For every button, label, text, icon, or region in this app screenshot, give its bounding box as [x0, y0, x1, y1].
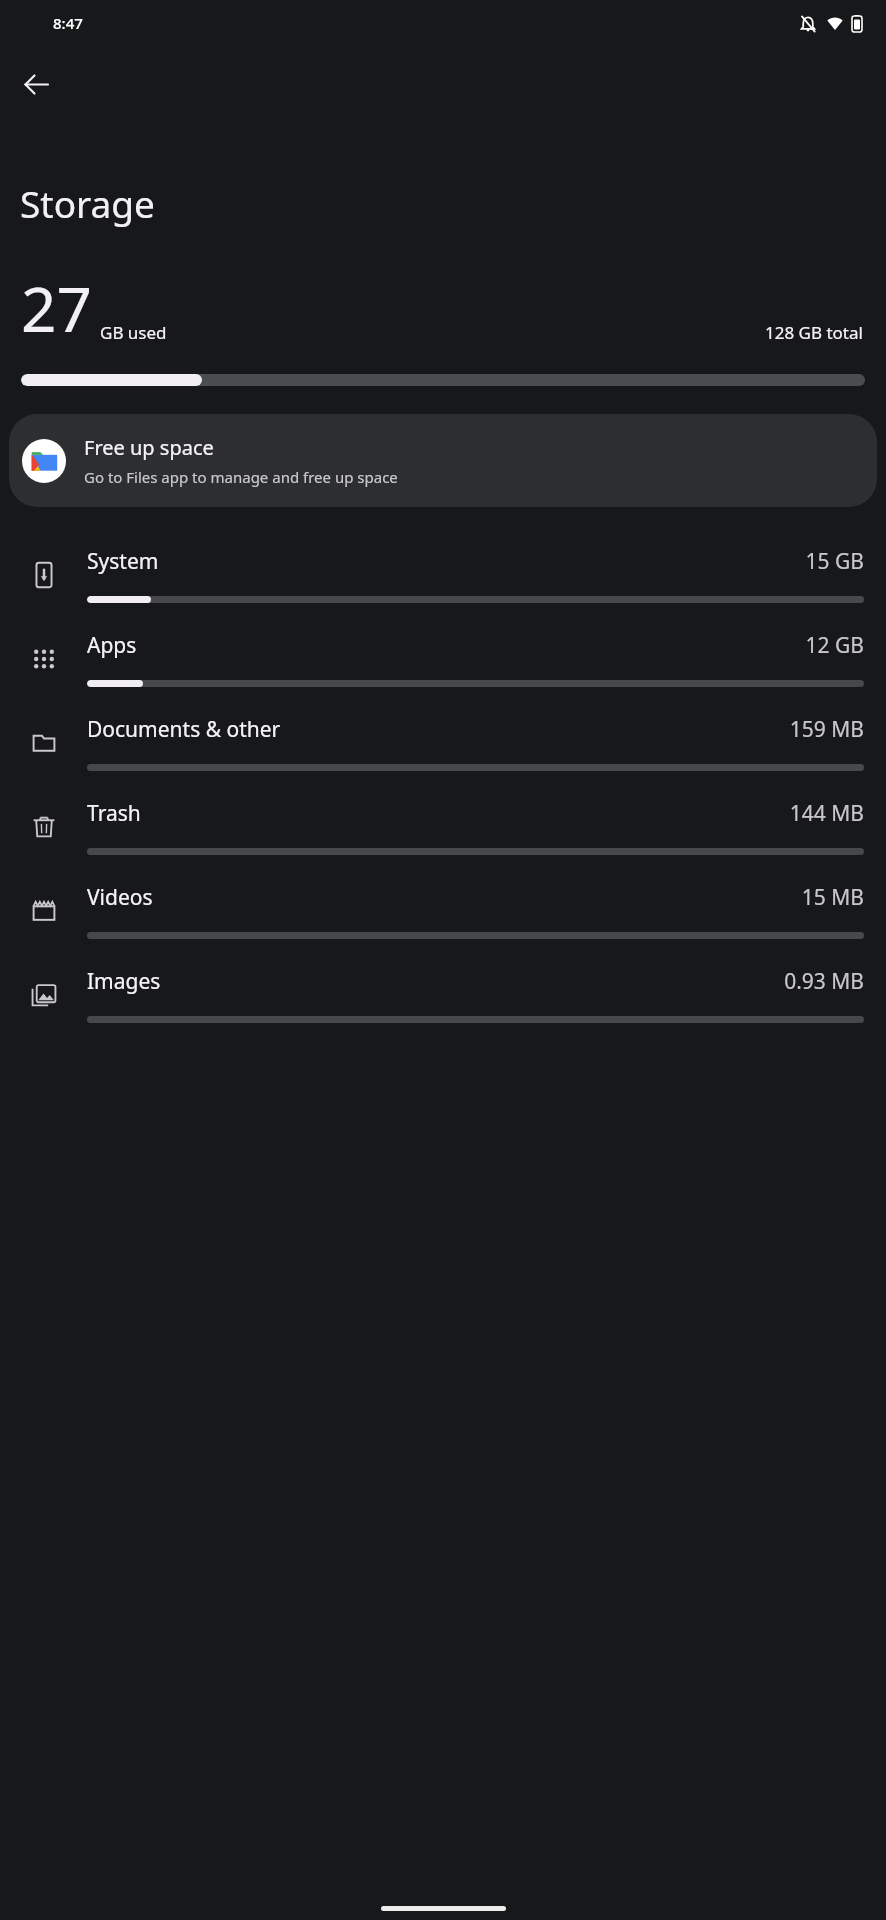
- button[interactable]: Documents & other: [0, 701, 886, 785]
- staticText: 0.93 MB: [784, 967, 864, 996]
- staticText: 159 MB: [789, 715, 864, 744]
- staticText: 15 GB: [805, 547, 864, 576]
- staticText: Free up space: [84, 434, 214, 461]
- staticText: 144 MB: [789, 799, 864, 828]
- staticText: 12 GB: [805, 631, 864, 660]
- staticText: 27: [21, 266, 92, 350]
- staticText: 8:47: [53, 13, 83, 33]
- staticText: Apps: [87, 631, 805, 660]
- button[interactable]: Free up space: [9, 414, 877, 507]
- staticText: Videos: [87, 883, 801, 912]
- staticText: Documents & other: [87, 715, 789, 744]
- button[interactable]: System: [0, 533, 886, 617]
- staticText: Images: [87, 967, 784, 996]
- staticText: Storage: [20, 178, 155, 228]
- button[interactable]: Trash: [0, 785, 886, 869]
- staticText: Trash: [87, 799, 789, 828]
- staticText: GB used: [100, 321, 167, 344]
- staticText: 15 MB: [801, 883, 864, 912]
- button[interactable]: Images: [0, 953, 886, 1037]
- button[interactable]: Back: [8, 56, 64, 112]
- staticText: System: [87, 547, 805, 576]
- staticText: Go to Files app to manage and free up sp…: [84, 467, 398, 487]
- staticText: 128 GB total: [765, 321, 863, 344]
- button[interactable]: Apps: [0, 617, 886, 701]
- button[interactable]: Videos: [0, 869, 886, 953]
